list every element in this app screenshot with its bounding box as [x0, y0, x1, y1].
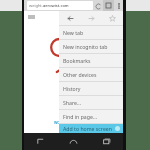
button[interactable]: Bookmarks — [59, 54, 123, 67]
button[interactable]: Forward — [81, 11, 102, 25]
button[interactable]: More options — [114, 0, 123, 11]
button[interactable]: New tab — [59, 26, 123, 39]
staticText: Share... — [63, 99, 82, 106]
staticText: Add to home screen — [63, 125, 112, 132]
button[interactable]: Tabs — [103, 0, 114, 11]
staticText: New tab — [63, 29, 84, 36]
button[interactable]: Add to home screen — [59, 124, 123, 133]
staticText: New incognito tab — [63, 43, 108, 50]
staticText: Bookmarks — [63, 57, 91, 64]
button[interactable]: History — [59, 82, 123, 95]
staticText: History — [63, 85, 81, 92]
button[interactable]: Share... — [59, 96, 123, 109]
button[interactable]: Recents — [90, 133, 123, 150]
button[interactable]: Reload — [93, 1, 103, 11]
button[interactable]: New incognito tab — [59, 40, 123, 53]
staticText: weight. — [29, 3, 43, 8]
staticText: aerowist.com — [43, 3, 69, 8]
staticText: WORLD — [54, 120, 67, 125]
staticText: Other devices — [63, 71, 97, 78]
button[interactable]: Back — [59, 11, 81, 25]
button[interactable]: Bookmark — [102, 11, 123, 25]
button[interactable]: Other devices — [59, 68, 123, 81]
button[interactable]: Address bar — [27, 1, 93, 10]
button[interactable]: Back — [24, 133, 57, 150]
staticText: Find in page... — [63, 113, 98, 120]
button[interactable]: Find in page... — [59, 110, 123, 123]
button[interactable]: Home — [57, 133, 90, 150]
